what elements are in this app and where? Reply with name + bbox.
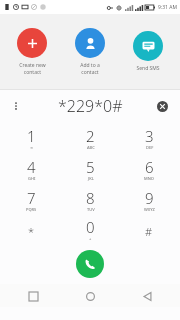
button[interactable]: Home [79, 285, 101, 307]
staticText: # [145, 224, 153, 239]
button[interactable]: 5 [62, 154, 118, 184]
button[interactable]: 2 [62, 123, 118, 153]
button[interactable]: Send SMS [122, 29, 174, 74]
staticText: 3 [145, 126, 154, 146]
button[interactable]: Add to a contact [64, 26, 116, 78]
staticText: GHI [28, 176, 36, 181]
staticText: Add to a contact [80, 62, 100, 76]
staticText: *229*0# [58, 95, 123, 117]
staticText: MNO [144, 176, 154, 181]
button[interactable]: 9 [121, 185, 177, 215]
staticText: 9 [145, 188, 154, 208]
staticText: 6 [145, 157, 154, 177]
button[interactable]: Call [76, 250, 104, 278]
staticText: + [89, 236, 92, 241]
staticText: PQRS [26, 207, 37, 212]
staticText: * [28, 224, 35, 239]
staticText: Create new contact [19, 62, 46, 76]
staticText: TUV [87, 207, 95, 212]
staticText: 9:31 AM [158, 4, 177, 11]
staticText: WXYZ [144, 207, 155, 212]
button[interactable]: 3 [121, 123, 177, 153]
button[interactable]: * [3, 215, 59, 244]
staticText: 4 [27, 157, 36, 177]
button[interactable]: 4 [3, 154, 59, 184]
button[interactable]: 7 [3, 185, 59, 215]
button[interactable]: Back [136, 285, 158, 307]
button[interactable]: Create new contact [6, 26, 58, 78]
staticText: 2 [86, 126, 95, 146]
button[interactable]: More options [6, 96, 26, 116]
staticText: 0 [86, 217, 95, 237]
button[interactable]: Recent apps [22, 285, 44, 307]
staticText: Send SMS [136, 65, 160, 72]
staticText: 5 [86, 157, 95, 177]
button[interactable]: 8 [62, 185, 118, 215]
staticText: DEF [146, 145, 154, 150]
staticText: JKL [88, 176, 94, 181]
staticText: 8 [86, 188, 95, 208]
staticText: ABC [87, 145, 95, 150]
staticText: 1 [27, 126, 36, 146]
button[interactable]: 1 [3, 123, 59, 153]
button[interactable]: # [121, 215, 177, 244]
button[interactable]: 6 [121, 154, 177, 184]
button[interactable]: Backspace [152, 96, 172, 116]
staticText: 7 [27, 188, 36, 208]
button[interactable]: 0 [62, 215, 118, 244]
staticText: ∞ [30, 145, 34, 150]
